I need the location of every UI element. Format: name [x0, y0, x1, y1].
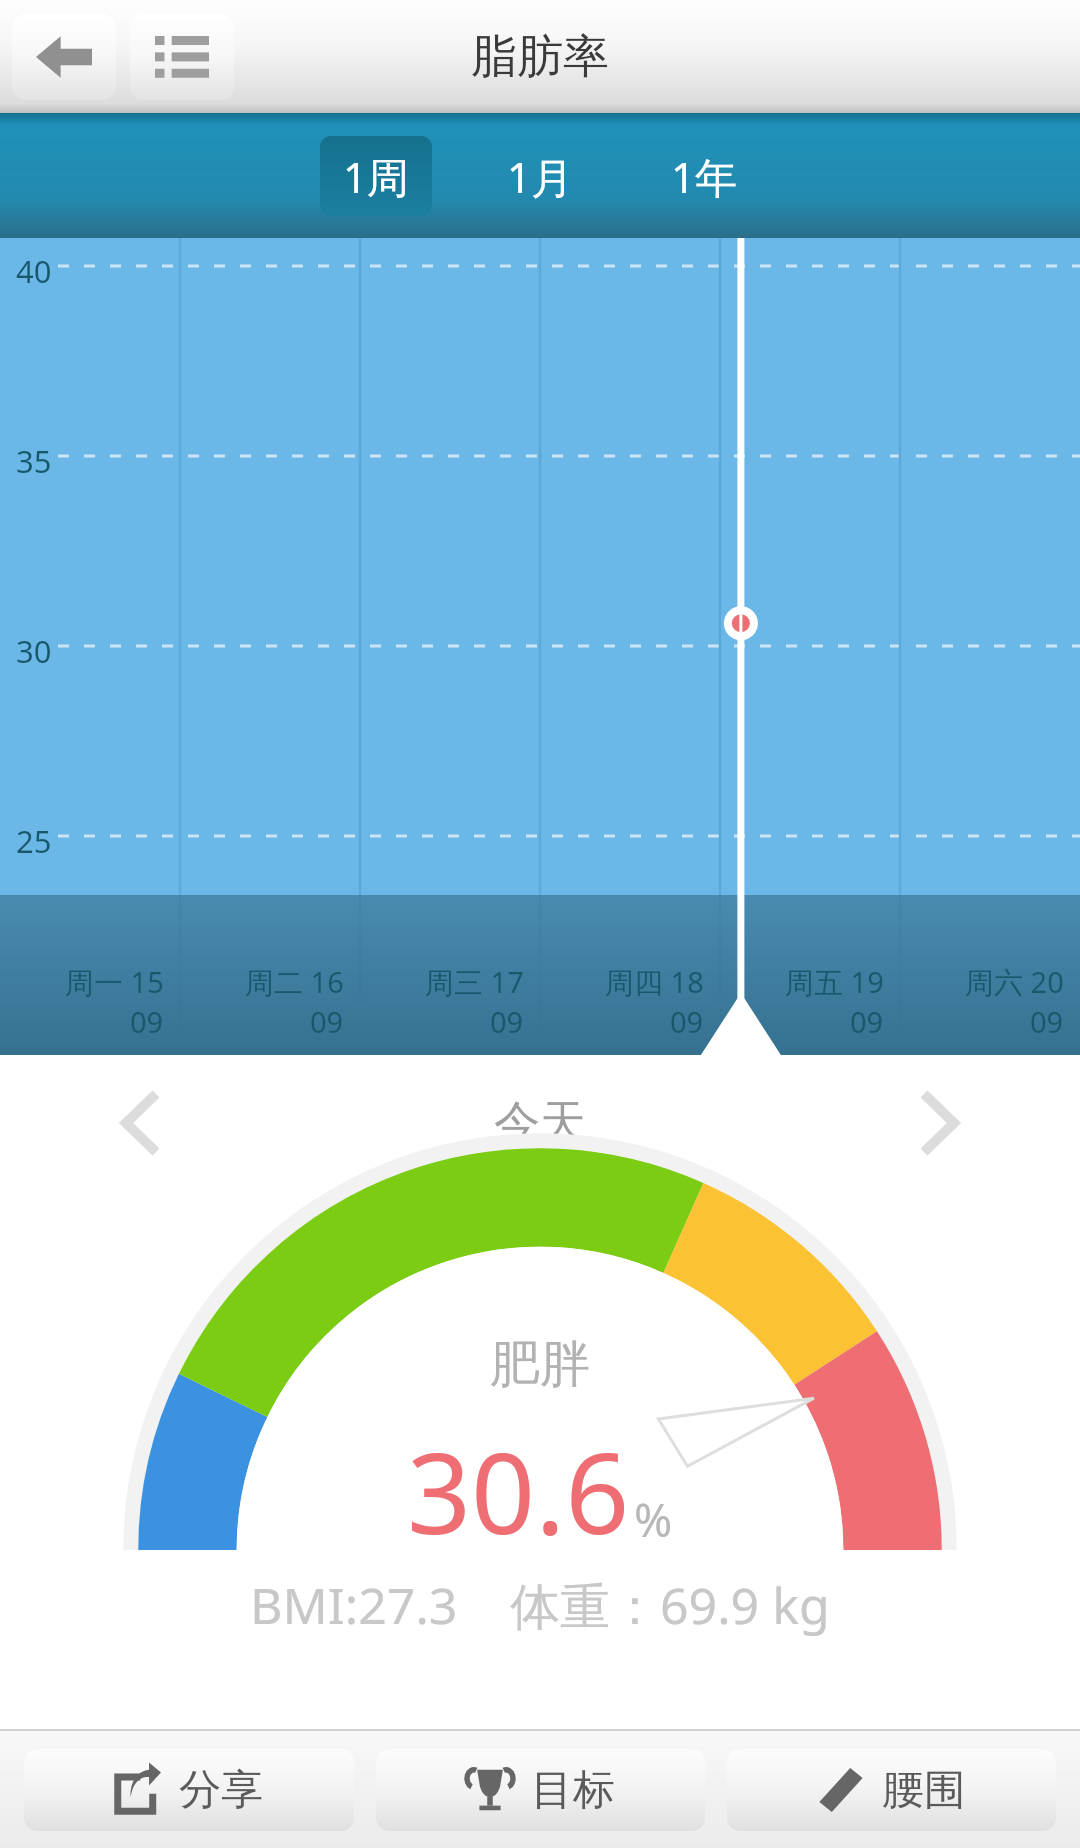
staticText: 09: [850, 1002, 884, 1041]
staticText: 09: [1030, 1002, 1064, 1041]
staticText: 分享: [179, 1764, 263, 1817]
staticText: 09: [490, 1002, 524, 1041]
staticText: 周四 18: [605, 962, 704, 1002]
button[interactable]: Back: [12, 14, 116, 100]
button[interactable]: 腰围: [727, 1749, 1056, 1831]
staticText: 肥胖: [490, 1333, 590, 1396]
staticText: 腰围: [882, 1764, 966, 1817]
staticText: 体重：69.9 kg: [510, 1571, 830, 1639]
staticText: 周三 17: [425, 962, 524, 1002]
staticText: 09: [310, 1002, 344, 1041]
staticText: %: [634, 1488, 673, 1551]
staticText: 25: [16, 820, 52, 862]
staticText: 1年: [671, 148, 738, 205]
button[interactable]: 1月: [484, 136, 596, 216]
staticText: 1周: [343, 148, 410, 205]
staticText: BMI:27.3: [250, 1571, 458, 1639]
button[interactable]: Next day: [902, 1085, 978, 1161]
staticText: 周二 16: [245, 962, 344, 1002]
button[interactable]: Previous day: [102, 1085, 178, 1161]
staticText: 09: [130, 1002, 164, 1041]
staticText: 30: [16, 630, 52, 672]
staticText: 40: [16, 250, 52, 292]
staticText: 周六 20: [965, 962, 1064, 1002]
staticText: 09: [670, 1002, 704, 1041]
staticText: 30.6: [407, 1414, 630, 1567]
staticText: 脂肪率: [471, 28, 609, 86]
staticText: 35: [16, 440, 52, 482]
staticText: 今天: [494, 1094, 586, 1152]
staticText: 目标: [531, 1764, 615, 1817]
button[interactable]: 目标: [376, 1749, 705, 1831]
button[interactable]: 分享: [24, 1749, 354, 1831]
staticText: 周五 19: [785, 962, 884, 1002]
staticText: 1月: [507, 148, 574, 205]
staticText: 周一 15: [65, 962, 164, 1002]
button[interactable]: 1周: [320, 136, 432, 216]
button[interactable]: Menu: [130, 14, 234, 100]
button[interactable]: 1年: [648, 136, 760, 216]
